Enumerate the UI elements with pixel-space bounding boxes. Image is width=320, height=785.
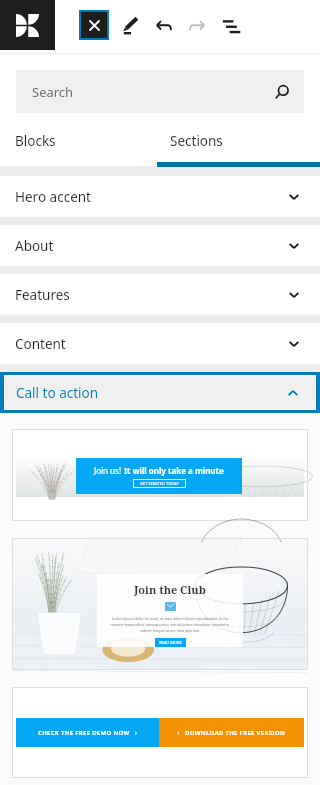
button[interactable]: Content [0,323,320,364]
staticText: Join the Club [134,582,206,597]
staticText: Features [15,286,70,304]
button[interactable]: Features [0,274,320,315]
staticText: Search [32,83,74,101]
staticText: › [135,728,138,738]
staticText: ‹ [177,728,180,738]
staticText: It will only take a minute [124,465,224,476]
button[interactable]: List view [213,9,246,42]
button[interactable]: WordPress [0,0,55,50]
button[interactable]: Join us! [12,429,308,521]
button[interactable]: Edit [114,9,147,42]
staticText: Join us! [94,465,124,476]
staticText: Lorem ipsum dolor sit amet, at mea dolor… [109,616,231,633]
staticText: Hero accent [15,188,91,206]
button[interactable]: Undo [147,9,180,42]
staticText: DOWNLOAD THE FREE VERSION [185,729,286,737]
staticText: CHECK THE FREE DEMO NOW [38,729,130,737]
staticText: GET STARTED TODAY [140,481,179,486]
staticText: Sections [170,132,223,150]
staticText: Content [15,335,66,353]
button[interactable]: Sections [157,120,320,162]
button[interactable]: CHECK THE FREE DEMO NOW [16,718,159,747]
button[interactable]: Join the Club [12,538,308,670]
staticText: Blocks [15,132,56,150]
staticText: READ MORE [159,640,182,645]
staticText: Call to action [16,384,99,402]
staticText: About [15,237,54,255]
button[interactable]: CHECK THE FREE DEMO NOW [12,687,308,778]
button[interactable]: Call to action [0,372,320,413]
button[interactable]: READ MORE [155,638,186,647]
button[interactable]: ‹ [159,718,304,747]
button[interactable]: Blocks [0,120,157,162]
button[interactable]: About [0,225,320,266]
button[interactable]: Hero accent [0,176,320,217]
button[interactable]: Search [16,70,304,113]
button[interactable]: Close [79,10,109,40]
button[interactable]: Redo [180,9,213,42]
